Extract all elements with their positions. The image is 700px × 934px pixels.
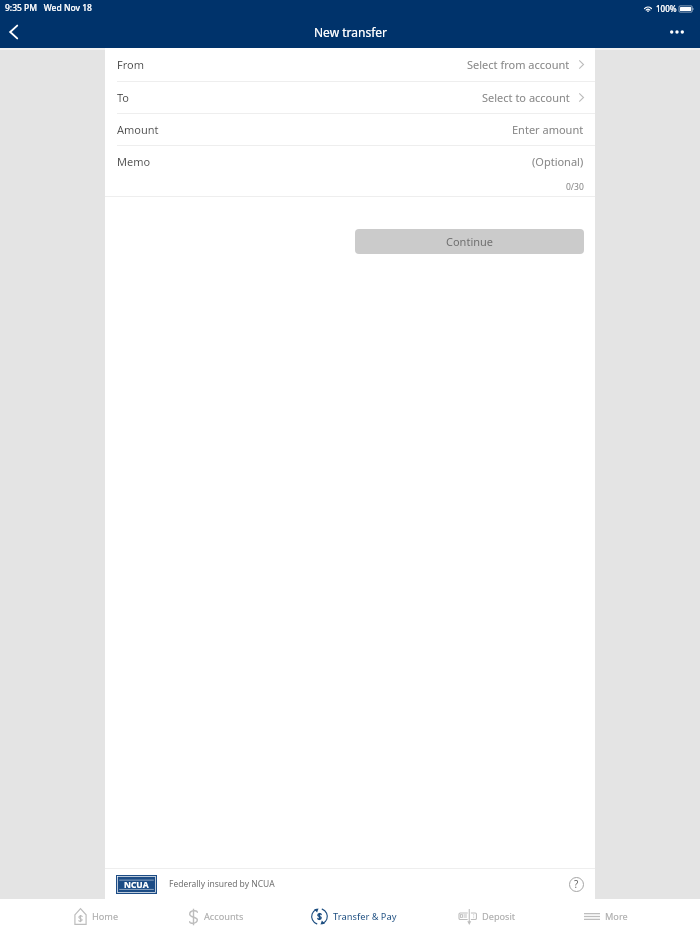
staticText: New transfer <box>314 24 387 40</box>
button[interactable]: Deposit <box>459 899 516 934</box>
staticText: 100% <box>656 3 677 14</box>
staticText: Home <box>92 910 119 923</box>
button[interactable]: From <box>105 48 595 81</box>
staticText: Continue <box>446 234 494 249</box>
button[interactable]: To <box>105 82 595 113</box>
staticText: 0/30 <box>566 181 584 193</box>
staticText: Federally insured by NCUA <box>169 878 275 890</box>
button[interactable]: Accounts <box>188 899 244 934</box>
staticText: Accounts <box>204 910 244 923</box>
staticText: NCUA <box>124 879 149 891</box>
staticText: ? <box>574 877 579 891</box>
button[interactable]: Amount <box>105 114 595 145</box>
button[interactable]: Back <box>0 16 28 48</box>
staticText: 9:35 PM Wed Nov 18 <box>5 2 92 14</box>
button[interactable]: More options <box>654 16 700 48</box>
staticText: Transfer & Pay <box>333 910 397 923</box>
button[interactable]: More <box>584 899 628 934</box>
button[interactable]: Memo <box>105 146 595 196</box>
button[interactable]: Transfer & Pay <box>311 899 397 934</box>
staticText: From <box>117 57 144 72</box>
staticText: Enter amount <box>512 122 584 137</box>
button[interactable]: Home <box>74 899 119 934</box>
staticText: More <box>605 910 628 923</box>
staticText: To <box>117 90 130 105</box>
staticText: Memo <box>117 154 151 169</box>
staticText: Select from account <box>467 57 570 72</box>
staticText: Deposit <box>482 910 516 923</box>
staticText: (Optional) <box>532 154 584 169</box>
button[interactable]: Continue <box>355 229 584 254</box>
staticText: Amount <box>117 122 159 137</box>
staticText: Select to account <box>482 90 570 105</box>
button[interactable]: Help <box>565 873 587 895</box>
